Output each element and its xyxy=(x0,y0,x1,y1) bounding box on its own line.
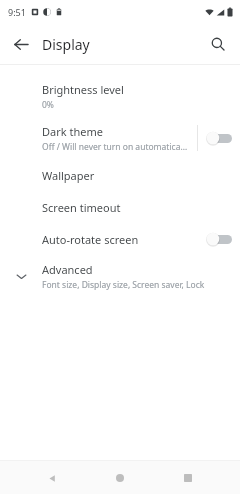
button[interactable]: Home xyxy=(108,466,132,490)
staticText: Screen timeout xyxy=(42,200,121,215)
staticText: Auto-rotate screen xyxy=(42,232,139,247)
staticText: 9:51 xyxy=(8,6,26,18)
button[interactable]: Search xyxy=(202,28,234,60)
staticText: Font size, Display size, Screen saver, L… xyxy=(42,279,232,291)
button[interactable]: Advanced xyxy=(0,255,240,297)
button[interactable]: Dark theme xyxy=(0,117,240,159)
button[interactable]: Auto-rotate screen xyxy=(0,223,240,255)
button[interactable]: Auto-rotate screen xyxy=(198,223,240,255)
button[interactable]: Back xyxy=(40,466,64,490)
staticText: Advanced xyxy=(42,262,93,277)
staticText: 0% xyxy=(42,99,54,111)
button[interactable]: Recent apps xyxy=(176,466,200,490)
staticText: Dark theme xyxy=(42,124,103,139)
staticText: Off / Will never turn on automatically xyxy=(42,141,189,153)
button[interactable]: Screen timeout xyxy=(0,191,240,223)
staticText: Wallpaper xyxy=(42,168,95,183)
button[interactable]: Brightness level xyxy=(0,75,240,117)
staticText: Brightness level xyxy=(42,82,124,97)
button[interactable]: Navigate up xyxy=(5,28,37,60)
staticText: Display xyxy=(42,35,90,54)
button[interactable]: Dark theme xyxy=(198,117,240,159)
button[interactable]: Wallpaper xyxy=(0,159,240,191)
